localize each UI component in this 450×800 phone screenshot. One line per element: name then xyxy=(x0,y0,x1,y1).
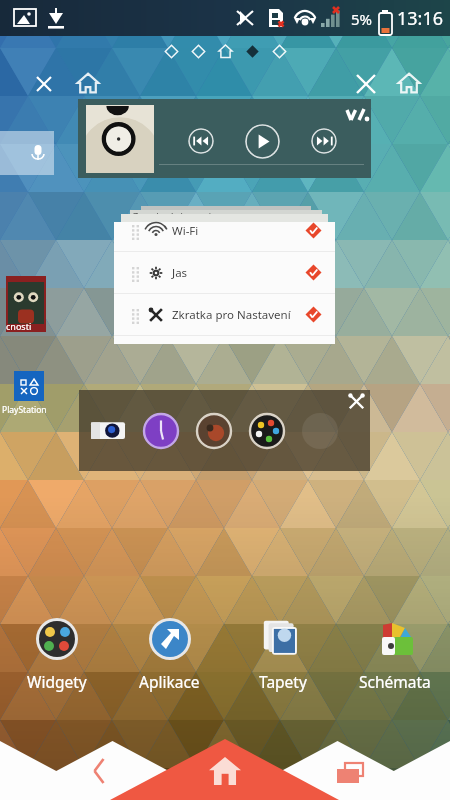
button[interactable]: Dock settings xyxy=(349,394,364,409)
staticText: Widgety xyxy=(27,671,87,692)
button[interactable]: Home xyxy=(203,749,247,793)
button[interactable]: Widgety xyxy=(0,615,113,692)
staticText: Aplikace xyxy=(139,671,200,692)
button[interactable]: Set home page xyxy=(394,68,424,98)
button[interactable]: Previous xyxy=(188,128,214,154)
staticText: cnosti xyxy=(6,320,32,332)
staticText: Schémata xyxy=(359,671,431,692)
button[interactable]: Set home page xyxy=(73,68,103,98)
button[interactable]: Camera xyxy=(79,390,370,471)
button[interactable]: Page 5 xyxy=(266,40,293,62)
button[interactable]: Empty slot xyxy=(302,413,338,449)
button[interactable]: Gallery xyxy=(196,413,232,449)
button[interactable]: Recent apps xyxy=(328,750,372,794)
button[interactable]: Next xyxy=(311,128,337,154)
staticText: PlayStation xyxy=(2,404,47,416)
button[interactable]: Zkratka pro Nastavení xyxy=(114,294,335,335)
button[interactable]: Page 2 xyxy=(185,40,212,62)
button[interactable]: Back xyxy=(78,749,122,793)
button[interactable]: Wi-Fi xyxy=(114,222,335,251)
button[interactable]: Schémata xyxy=(339,615,450,692)
button[interactable]: Page 1 xyxy=(158,40,185,62)
staticText: 13:16 xyxy=(397,6,444,31)
button[interactable]: Clock xyxy=(143,413,179,449)
staticText: Zkratka pro Nastavení xyxy=(172,307,291,323)
button[interactable]: Remove page xyxy=(32,72,56,96)
staticText: 5% xyxy=(351,9,373,29)
button[interactable]: Page 3 xyxy=(212,40,239,62)
button[interactable]: Play xyxy=(245,124,280,159)
staticText: Zamykací obrazovka xyxy=(133,210,219,222)
button[interactable]: Remove page xyxy=(352,70,380,98)
button[interactable]: Previous xyxy=(78,99,371,178)
staticText: Jas xyxy=(172,265,188,281)
staticText: Wi-Fi xyxy=(172,223,199,239)
staticText: Tapety xyxy=(259,671,307,692)
button[interactable]: Jas xyxy=(114,252,335,293)
button[interactable]: Aplikace xyxy=(113,615,226,692)
button[interactable]: Camera xyxy=(90,413,126,449)
button[interactable]: Page 4 xyxy=(239,40,266,62)
button[interactable]: Tapety xyxy=(226,615,339,692)
button[interactable]: Themes xyxy=(249,413,285,449)
